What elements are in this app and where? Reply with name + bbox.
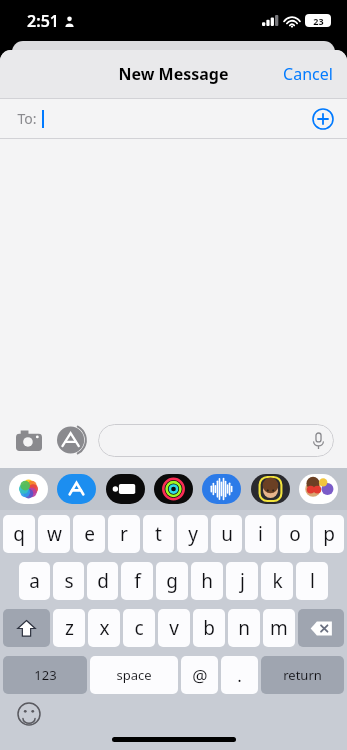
staticText: n — [238, 615, 250, 641]
staticText: e — [84, 521, 95, 547]
button[interactable]: d — [87, 562, 118, 600]
staticText: 2:51 — [27, 10, 59, 32]
staticText: f — [134, 568, 141, 594]
button[interactable]: g — [156, 562, 188, 600]
button[interactable]: return — [261, 656, 344, 694]
button[interactable]: m — [263, 609, 295, 647]
button[interactable]: space — [90, 656, 178, 694]
staticText: c — [134, 615, 144, 641]
staticText: To: — [17, 109, 37, 128]
button[interactable]: Memoji — [250, 472, 291, 506]
button[interactable]: h — [191, 562, 223, 600]
staticText: space — [116, 666, 152, 684]
button[interactable]: Emoji — [17, 702, 41, 726]
button[interactable]: @ — [181, 656, 218, 694]
button[interactable] — [98, 424, 334, 457]
button[interactable]: n — [228, 609, 260, 647]
staticText: Cancel — [283, 63, 333, 85]
staticText: g — [166, 568, 178, 594]
button[interactable]: s — [53, 562, 84, 600]
staticText: y — [188, 521, 198, 547]
button[interactable]: Apps — [56, 423, 90, 457]
staticText: i — [258, 521, 263, 547]
staticText: o — [289, 521, 301, 547]
staticText: p — [323, 521, 335, 547]
staticText: h — [201, 568, 213, 594]
staticText: r — [120, 521, 128, 547]
button[interactable]: To: — [0, 99, 347, 138]
staticText: j — [240, 568, 245, 594]
button[interactable]: z — [53, 609, 85, 647]
button[interactable]: Backspace — [298, 609, 344, 647]
button[interactable]: t — [143, 515, 174, 553]
staticText: d — [97, 568, 109, 594]
staticText: u — [221, 521, 233, 547]
button[interactable]: b — [193, 609, 225, 647]
button[interactable]: u — [211, 515, 242, 553]
button[interactable]: q — [3, 515, 35, 553]
button[interactable]: p — [313, 515, 344, 553]
button[interactable]: Add contact — [312, 108, 334, 130]
staticText: a — [29, 568, 40, 594]
button[interactable]: Camera — [13, 424, 45, 456]
staticText: l — [310, 568, 315, 594]
staticText: k — [272, 568, 283, 594]
staticText: b — [203, 615, 215, 641]
button[interactable]: Audio message — [201, 472, 242, 506]
button[interactable]: Fitness — [153, 472, 194, 506]
staticText: s — [64, 568, 74, 594]
button[interactable]: j — [226, 562, 258, 600]
button[interactable]: Photos — [8, 472, 49, 506]
button[interactable]: v — [158, 609, 190, 647]
button[interactable]: o — [279, 515, 310, 553]
staticText: return — [283, 666, 322, 684]
button[interactable]: y — [177, 515, 208, 553]
staticText: @ — [192, 664, 208, 687]
button[interactable]: App Store — [56, 472, 97, 506]
staticText: New Message — [118, 63, 229, 85]
button[interactable]: 123 — [3, 656, 87, 694]
staticText: 123 — [34, 666, 57, 684]
staticText: q — [13, 521, 25, 547]
staticText: . — [237, 664, 242, 687]
button[interactable]: e — [73, 515, 105, 553]
button[interactable]: x — [88, 609, 120, 647]
button[interactable]: l — [296, 562, 328, 600]
button[interactable]: a — [19, 562, 50, 600]
staticText: x — [99, 615, 110, 641]
button[interactable]: Shift — [3, 609, 50, 647]
button[interactable]: k — [261, 562, 293, 600]
button[interactable]: f — [121, 562, 153, 600]
button[interactable]: . — [221, 656, 258, 694]
staticText: v — [169, 615, 179, 641]
staticText: z — [65, 615, 74, 641]
staticText: 23 — [313, 15, 324, 27]
staticText: t — [155, 521, 162, 547]
button[interactable]: Memoji stickers — [298, 472, 339, 506]
staticText: m — [270, 615, 288, 641]
button[interactable]: i — [245, 515, 276, 553]
button[interactable]: r — [108, 515, 140, 553]
button[interactable]: c — [123, 609, 155, 647]
staticText: w — [47, 521, 62, 547]
button[interactable]: w — [38, 515, 70, 553]
button[interactable]: Cancel — [269, 53, 347, 95]
button[interactable]: Apple Cash — [105, 472, 146, 506]
